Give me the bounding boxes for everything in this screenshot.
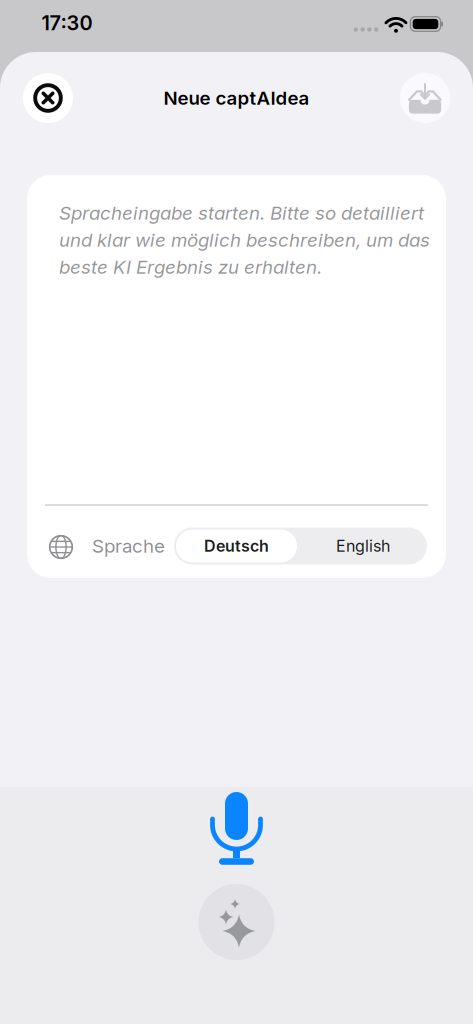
staticText: Spracheingabe starten. Bitte so detailli…	[59, 202, 430, 278]
staticText: English	[336, 537, 390, 555]
button[interactable]	[400, 73, 450, 123]
button[interactable]	[198, 884, 274, 960]
staticText: Sprache	[92, 535, 165, 557]
button[interactable]: Deutsch	[176, 529, 297, 562]
button[interactable]	[23, 73, 73, 123]
button[interactable]: English	[303, 527, 423, 564]
staticText: Neue captAIdea	[163, 87, 309, 109]
staticText: 17:30	[41, 11, 92, 35]
staticText: Deutsch	[204, 537, 269, 555]
button[interactable]	[201, 788, 271, 868]
